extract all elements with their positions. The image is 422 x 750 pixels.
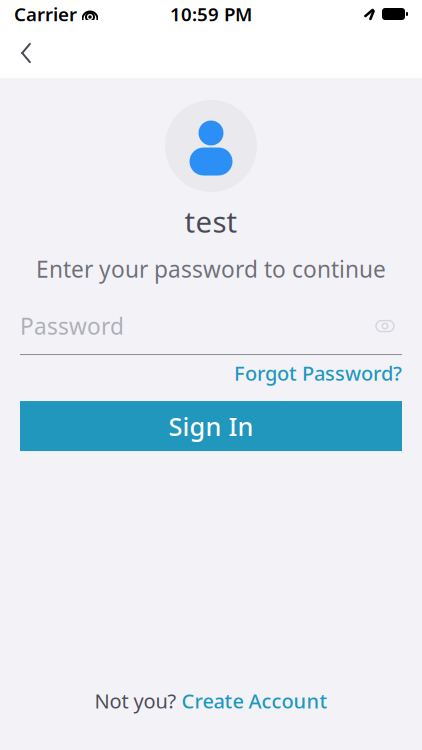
staticText: Not you? — [94, 687, 176, 714]
button[interactable]: Forgot Password? — [0, 355, 422, 391]
staticText: Create Account — [181, 687, 327, 714]
staticText: 10:59 PM — [170, 2, 252, 26]
staticText: test — [184, 202, 237, 241]
staticText: Password — [20, 311, 124, 341]
button[interactable]: Back — [0, 28, 52, 78]
staticText: Enter your password to continue — [36, 254, 386, 284]
staticText: Forgot Password? — [234, 360, 402, 386]
button[interactable]: Sign In — [20, 401, 402, 451]
staticText: Sign In — [168, 409, 253, 443]
button[interactable]: Show password — [368, 312, 402, 340]
staticText: Carrier — [14, 2, 77, 26]
button[interactable]: Create Account — [181, 687, 327, 714]
